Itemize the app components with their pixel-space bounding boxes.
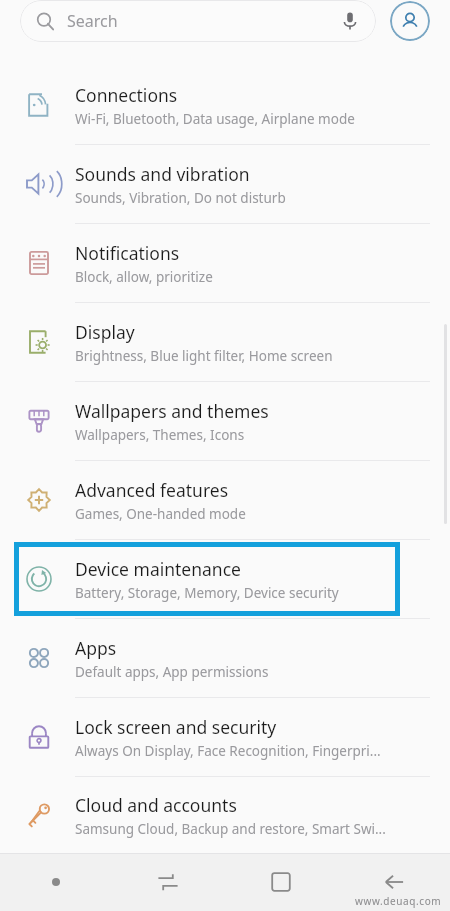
button[interactable]: Wallpapers and themes <box>0 382 450 460</box>
staticText: Block, allow, prioritize <box>75 268 213 286</box>
staticText: Sounds, Vibration, Do not disturb <box>75 189 286 207</box>
button[interactable]: Search <box>20 0 376 42</box>
staticText: Default apps, App permissions <box>75 663 269 681</box>
button[interactable]: Account <box>390 1 430 41</box>
staticText: Always On Display, Face Recognition, Fin… <box>75 742 381 760</box>
staticText: Display <box>75 320 135 344</box>
staticText: Cloud and accounts <box>75 793 237 817</box>
staticText: Wallpapers, Themes, Icons <box>75 426 245 444</box>
staticText: Notifications <box>75 241 180 265</box>
staticText: Wallpapers and themes <box>75 399 269 423</box>
button[interactable]: Device maintenance <box>0 540 450 618</box>
staticText: Battery, Storage, Memory, Device securit… <box>75 584 339 602</box>
staticText: Search <box>67 10 118 32</box>
staticText: Lock screen and security <box>75 715 277 739</box>
staticText: Brightness, Blue light filter, Home scre… <box>75 347 333 365</box>
button[interactable]: Lock screen and security <box>0 698 450 776</box>
staticText: Wi-Fi, Bluetooth, Data usage, Airplane m… <box>75 110 355 128</box>
button[interactable]: Cloud and accounts <box>0 777 450 853</box>
staticText: Connections <box>75 83 178 107</box>
button[interactable]: Home <box>224 853 337 911</box>
staticText: Games, One-handed mode <box>75 505 246 523</box>
button[interactable]: Apps <box>0 619 450 697</box>
staticText: Sounds and vibration <box>75 162 250 186</box>
button[interactable]: Recents <box>112 853 224 911</box>
staticText: Device maintenance <box>75 557 241 581</box>
button[interactable]: Advanced features <box>0 461 450 539</box>
staticText: www.deuaq.com <box>355 894 442 908</box>
staticText: Samsung Cloud, Backup and restore, Smart… <box>75 820 386 838</box>
button[interactable]: Notifications <box>0 224 450 302</box>
staticText: Apps <box>75 636 117 660</box>
other: Voice search <box>340 11 360 31</box>
staticText: Advanced features <box>75 478 229 502</box>
button[interactable]: Connections <box>0 66 450 144</box>
button[interactable]: Back <box>337 853 450 911</box>
button[interactable]: Display <box>0 303 450 381</box>
button[interactable]: Sounds and vibration <box>0 145 450 223</box>
